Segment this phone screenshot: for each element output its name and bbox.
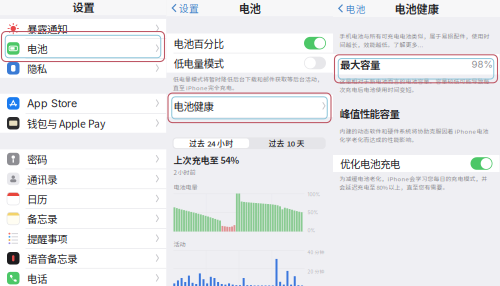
staticText: 0% [307,227,315,233]
staticText: 电池 [239,0,261,16]
staticText: 过去 10 天 [269,138,305,149]
button[interactable]: 备忘录 [0,209,166,228]
staticText: 过去 24 小时 [189,138,233,149]
button[interactable]: 电池 [333,0,370,17]
staticText: 暴露通知 [27,21,67,36]
staticText: 电池 [27,41,47,56]
staticText: App Store [27,97,77,110]
button[interactable]: App Store [0,94,166,113]
staticText: 50% [307,210,318,215]
button[interactable]: 电话 [0,268,166,286]
button[interactable]: 暴露通知 [0,19,166,38]
staticText: 100% [307,192,320,197]
staticText: 电池健康 [394,0,438,17]
staticText: 这是相对于新电池而言的电池容量。容量较低可能导致每次充电后电池使用时间变短。 [339,77,489,94]
staticText: 日历 [27,191,47,206]
staticText: 峰值性能容量 [339,106,399,121]
staticText: 隐私 [27,61,47,76]
staticText: 电池健康 [173,99,213,114]
button[interactable]: 钱包与 Apple Pay [0,114,166,133]
staticText: 设置 [72,0,94,15]
staticText: 通讯录 [27,171,57,186]
staticText: 上次充电至 54% [173,153,239,166]
staticText: 最大容量 [340,57,380,72]
staticText: 密码 [27,151,47,167]
button[interactable]: 隐私 [0,59,166,78]
button[interactable]: 过去 24 小时 [174,138,249,148]
button[interactable]: 提醒事项 [0,229,166,248]
staticText: 电池百分比 [173,36,223,51]
button[interactable]: 通讯录 [0,169,166,188]
staticText: 备忘录 [27,211,57,226]
button[interactable]: 设置 [166,0,204,17]
staticText: 电池电量 [173,183,197,191]
staticText: 低电量模式 [173,55,223,71]
staticText: 手机电池与所有可充电电池类似，属于易损配件，使用时间越长，效能越低。了解更多..… [339,32,489,49]
button[interactable]: 密码 [0,149,166,169]
staticText: 提醒事项 [27,231,67,246]
staticText: 活动 [173,239,185,248]
staticText: 语音备忘录 [27,251,77,266]
button[interactable]: 日历 [0,189,166,208]
button[interactable]: 电池 [0,39,166,58]
staticText: 钱包与 Apple Pay [27,116,105,131]
staticText: 内建的动态软件和硬件系统将协助克服因着 iPhone 电池化学老化而达成的性能影… [339,127,488,144]
staticText: 40 分钟 [307,249,324,256]
staticText: 20 分钟 [307,268,324,275]
button[interactable]: 过去 10 天 [249,138,325,148]
staticText: 电池 [345,1,365,15]
staticText: 低电量模式将暂时降低后台下载和邮件获取等后台活动，直至 iPhone 完全充电。 [173,75,323,92]
staticText: 电话 [27,271,47,286]
staticText: 设置 [179,1,199,15]
staticText: 为减缓电池老化，iPhone 会学习您每日的充电模式，并会延迟充电至 80% 以… [339,174,487,191]
button[interactable]: 电池健康 [166,95,333,117]
staticText: 98% [471,58,492,70]
button[interactable]: 语音备忘录 [0,249,166,268]
staticText: 2 小时前 [173,168,195,177]
staticText: 优化电池充电 [340,156,400,171]
